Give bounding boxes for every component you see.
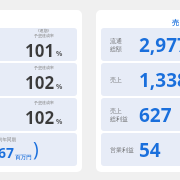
button[interactable]: 前年同期比 (0, 98, 77, 131)
staticText: 54 (139, 137, 161, 163)
button[interactable]: 前年同期比 (0, 28, 77, 61)
button[interactable]: 前年同期比 (0, 63, 77, 96)
staticText: 営業利益 (110, 146, 134, 154)
button[interactable]: 営業利益 (101, 133, 180, 166)
staticText: % (56, 117, 63, 127)
staticText: 1,338 (139, 67, 180, 93)
staticText: 百万円 (15, 154, 32, 161)
button[interactable]: 売上 (101, 63, 180, 96)
staticText: 売上 (110, 76, 122, 84)
staticText: 総利益 (110, 115, 128, 123)
staticText: 前年同期 (0, 137, 16, 143)
staticText: % (56, 82, 63, 92)
staticText: 101 (25, 39, 55, 61)
staticText: (通期) (38, 28, 49, 33)
staticText: % (56, 49, 63, 59)
staticText: 売 (172, 18, 179, 27)
staticText: 102 (25, 71, 55, 94)
staticText: +367 (0, 143, 15, 162)
button[interactable]: 前年同期 (0, 133, 77, 166)
button[interactable]: 売上 (101, 98, 180, 131)
button[interactable]: 流通 (101, 28, 180, 61)
staticText: 予想達成率 (34, 100, 54, 105)
staticText: 売上 (110, 107, 122, 115)
staticText: 予想達成率 (34, 65, 54, 70)
staticText: 予想達成率 (34, 33, 54, 38)
staticText: 102 (25, 106, 55, 129)
staticText: 流通 (110, 37, 122, 45)
staticText: 627 (139, 102, 172, 128)
staticText: ) (33, 136, 39, 162)
staticText: 2,977 (139, 32, 180, 58)
staticText: 総額 (110, 45, 122, 53)
